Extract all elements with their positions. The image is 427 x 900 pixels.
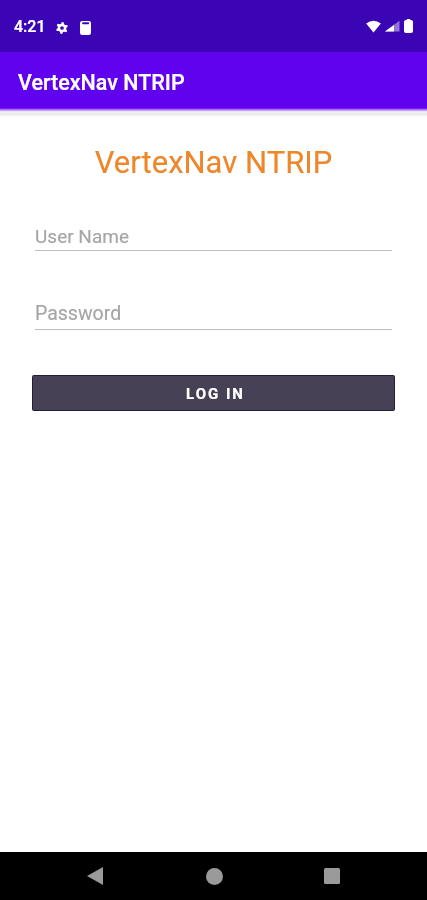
staticText: LOG IN bbox=[186, 385, 245, 403]
button[interactable]: Password bbox=[35, 296, 392, 330]
button[interactable]: Recent apps bbox=[308, 852, 356, 900]
button[interactable]: Home bbox=[190, 852, 238, 900]
staticText: Password bbox=[35, 302, 122, 325]
staticText: User Name bbox=[35, 225, 129, 247]
staticText: VertexNav NTRIP bbox=[0, 144, 427, 180]
staticText: 4:21 bbox=[14, 17, 46, 36]
button[interactable]: LOG IN bbox=[33, 376, 394, 410]
button[interactable]: User Name bbox=[35, 219, 392, 251]
staticText: VertexNav NTRIP bbox=[18, 70, 185, 95]
button[interactable]: Back bbox=[71, 852, 119, 900]
